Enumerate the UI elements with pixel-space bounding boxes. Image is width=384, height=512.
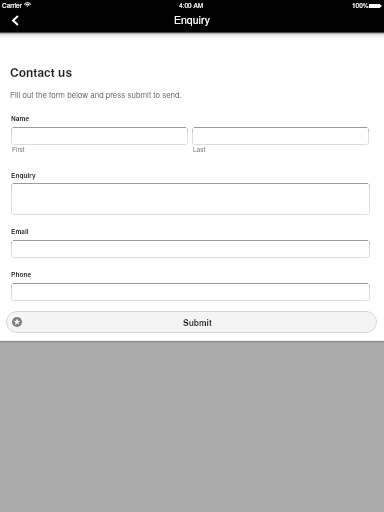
staticText: Phone	[11, 270, 32, 279]
staticText: Name	[11, 114, 30, 123]
button[interactable]: Back	[7, 12, 24, 29]
staticText: Submit	[183, 316, 212, 328]
staticText: Carrier	[2, 1, 22, 10]
staticText: 100%	[352, 1, 369, 10]
staticText: Enquiry	[174, 12, 210, 27]
staticText: Email	[11, 227, 29, 236]
staticText: Fill out the form below and press submit…	[10, 89, 182, 100]
staticText: Enquiry	[11, 171, 36, 180]
button[interactable]: Submit	[6, 311, 377, 333]
staticText: Last	[193, 145, 206, 154]
button[interactable]	[192, 127, 369, 145]
button[interactable]	[11, 283, 370, 301]
staticText: Contact us	[10, 63, 73, 80]
staticText: 4:00 AM	[179, 1, 204, 10]
staticText: First	[12, 145, 25, 154]
button[interactable]	[11, 183, 370, 215]
button[interactable]	[11, 240, 370, 258]
button[interactable]	[11, 127, 188, 145]
